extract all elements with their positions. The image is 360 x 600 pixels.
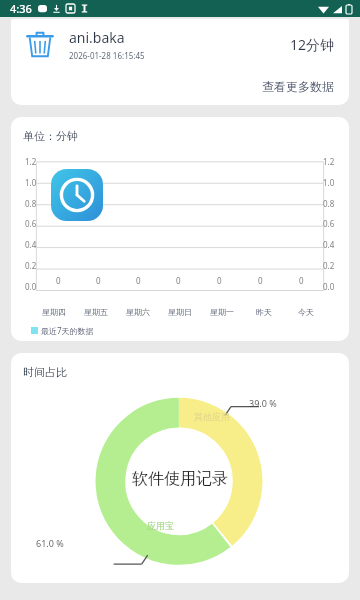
staticText: 单位：分钟 [23, 129, 78, 143]
staticText: 应用宝 [147, 520, 174, 531]
staticText: 1.2 [323, 156, 335, 167]
staticText: 1.2 [25, 156, 37, 167]
staticText: 0 [136, 275, 141, 286]
staticText: 星期一 [210, 307, 234, 317]
staticText: 0.8 [25, 198, 37, 209]
staticText: 昨天 [256, 307, 272, 317]
staticText: 0 [56, 275, 61, 286]
staticText: 星期四 [42, 307, 66, 317]
staticText: 星期日 [168, 307, 192, 317]
staticText: 其他应用 [194, 411, 230, 422]
staticText: 1.0 [323, 177, 335, 188]
staticText: 查看更多数据 [262, 79, 334, 94]
staticText: 星期六 [126, 307, 150, 317]
button[interactable]: 查看更多数据 [259, 76, 337, 97]
button[interactable]: Delete record [23, 27, 335, 61]
staticText: 0.0 [323, 281, 335, 292]
staticText: 0.4 [323, 239, 335, 250]
staticText: ani.baka [69, 28, 125, 47]
staticText: 0.6 [323, 218, 335, 229]
staticText: 最近7天的数据 [41, 325, 94, 336]
staticText: 12分钟 [290, 35, 335, 54]
staticText: 4:36 [10, 1, 32, 16]
staticText: 2026-01-28 16:15:45 [69, 50, 145, 61]
staticText: 0 [258, 275, 263, 286]
staticText: 0 [217, 275, 222, 286]
staticText: 1.0 [25, 177, 37, 188]
staticText: 61.0 % [36, 537, 64, 549]
staticText: 时间占比 [23, 365, 67, 379]
staticText: 0.0 [25, 281, 37, 292]
staticText: 0 [96, 275, 101, 286]
staticText: 39.0 % [249, 397, 277, 409]
staticText: 今天 [298, 307, 314, 317]
staticText: 0.6 [25, 218, 37, 229]
other: Usage time [51, 169, 103, 221]
staticText: 0.2 [323, 260, 335, 271]
other: Delete record [23, 27, 57, 61]
staticText: 0 [176, 275, 181, 286]
staticText: 0 [299, 275, 304, 286]
staticText: 0.4 [25, 239, 37, 250]
staticText: 软件使用记录 [132, 469, 228, 489]
staticText: 0.8 [323, 198, 335, 209]
staticText: 星期五 [84, 307, 108, 317]
staticText: 0.2 [25, 260, 37, 271]
